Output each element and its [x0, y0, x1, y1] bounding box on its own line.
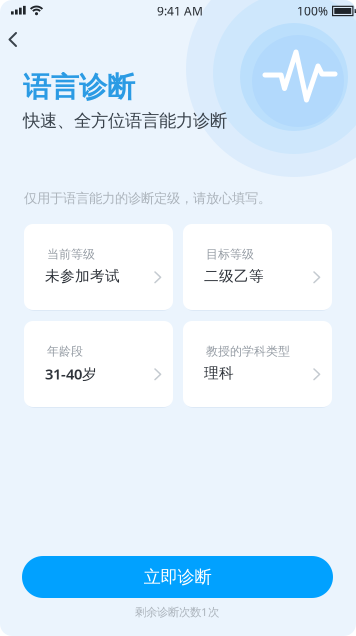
staticText: 剩余诊断次数1次	[135, 604, 219, 620]
staticText: 快速、全方位语言能力诊断	[23, 110, 227, 131]
staticText: 当前等级	[47, 247, 95, 262]
staticText: 语言诊断	[23, 70, 135, 104]
staticText: 未参加考试	[45, 267, 120, 285]
staticText: 年龄段	[47, 344, 83, 359]
button[interactable]: 年龄段	[24, 321, 173, 409]
button[interactable]: 当前等级	[24, 224, 173, 312]
staticText: 100%	[297, 3, 328, 19]
button[interactable]: 立即诊断	[22, 556, 333, 598]
staticText: 仅用于语言能力的诊断定级，请放心填写。	[24, 190, 271, 206]
button[interactable]: 目标等级	[183, 224, 332, 312]
staticText: 二级乙等	[204, 267, 264, 285]
staticText: 理科	[204, 364, 234, 382]
button[interactable]: 教授的学科类型	[183, 321, 332, 409]
staticText: 31-40岁	[45, 364, 97, 383]
staticText: 目标等级	[206, 247, 254, 262]
staticText: 立即诊断	[143, 566, 211, 588]
button[interactable]: Back	[0, 0, 44, 54]
staticText: 9:41 AM	[157, 3, 203, 19]
staticText: 教授的学科类型	[206, 344, 290, 359]
